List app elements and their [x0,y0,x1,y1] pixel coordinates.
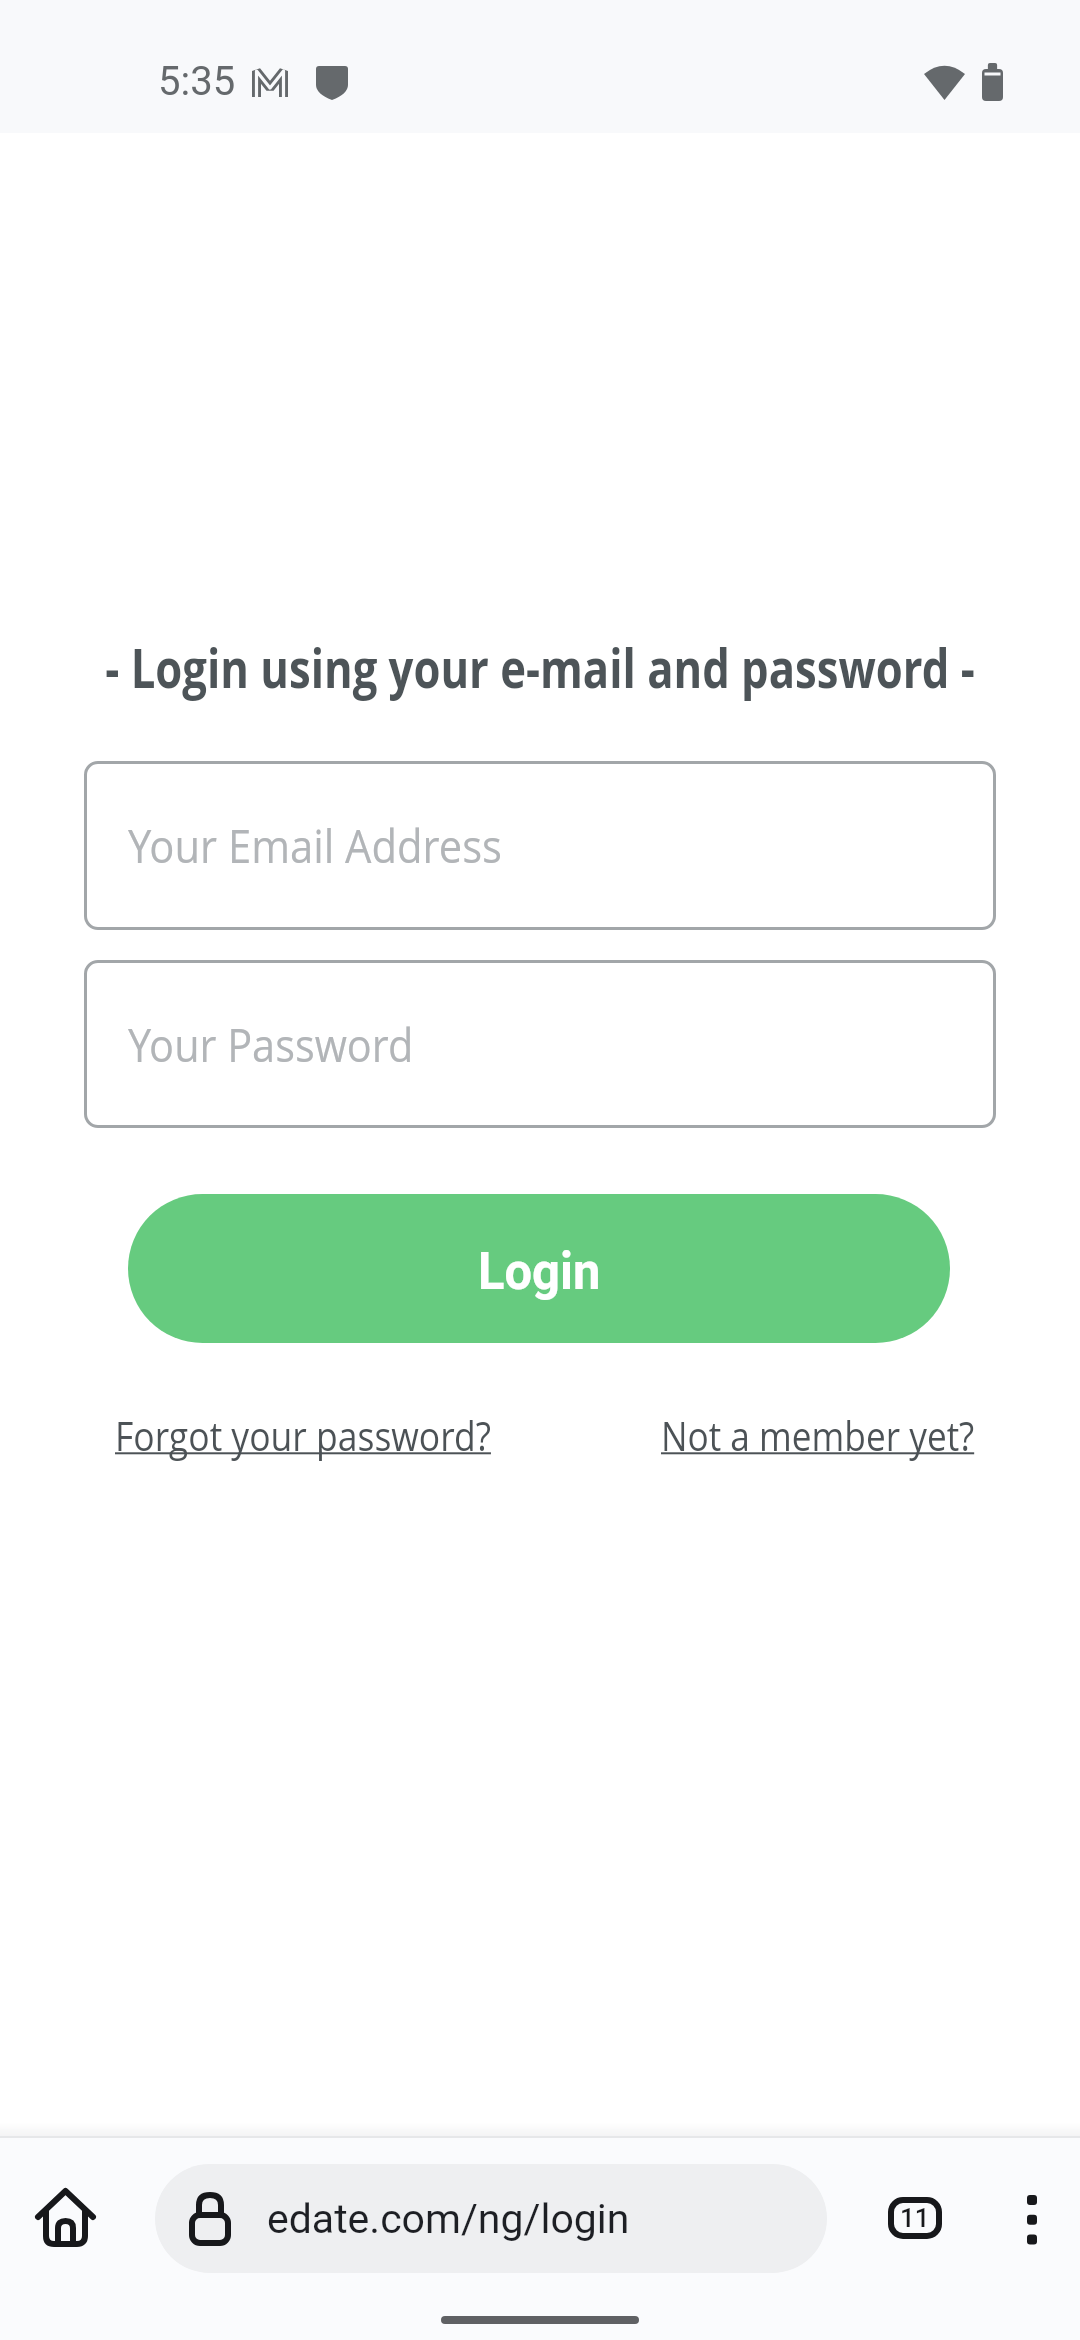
button[interactable] [1007,2185,1057,2251]
staticText: Your Email Address [128,815,502,876]
button[interactable]: 11 [888,2197,942,2239]
button[interactable]: Login [128,1194,950,1343]
button[interactable]: Your Password [84,960,996,1128]
staticText: edate.com/ng/login [267,2195,630,2243]
button[interactable]: Forgot your password? [115,1408,491,1462]
button[interactable]: Not a member yet? [661,1408,974,1462]
button[interactable] [30,2188,100,2258]
staticText: 5:35 [158,58,236,105]
staticText: Login [478,1241,601,1302]
staticText: 11 [900,2203,930,2233]
button[interactable]: edate.com/ng/login [155,2164,827,2273]
button[interactable]: Your Email Address [84,761,996,930]
staticText: - Login using your e-mail and password - [96,631,984,703]
staticText: Your Password [128,1014,414,1075]
